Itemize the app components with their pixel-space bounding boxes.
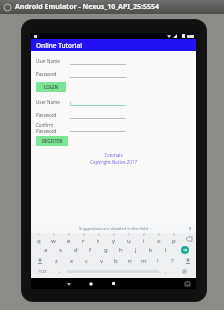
staticText: d xyxy=(74,246,78,254)
staticText: l xyxy=(165,246,167,254)
button[interactable]: 3 xyxy=(61,233,76,244)
staticText: b xyxy=(114,257,118,265)
button[interactable] xyxy=(70,56,126,65)
button[interactable]: Space xyxy=(67,269,159,274)
button[interactable]: m xyxy=(137,255,151,266)
button[interactable]: , xyxy=(53,266,67,277)
button[interactable]: d xyxy=(68,244,83,255)
staticText: n xyxy=(128,257,132,265)
staticText: REGISTER xyxy=(42,138,63,144)
staticText: c xyxy=(85,257,88,265)
staticText: 2 xyxy=(53,233,55,237)
staticText: r xyxy=(82,237,85,244)
button[interactable]: 9 xyxy=(151,233,166,244)
button[interactable]: v xyxy=(94,255,109,266)
button[interactable]: Voice input xyxy=(187,226,192,231)
staticText: e xyxy=(67,237,71,244)
button[interactable]: g xyxy=(98,244,113,255)
staticText: z xyxy=(55,257,58,265)
button[interactable]: Online Tutorial xyxy=(31,39,196,51)
staticText: 3 xyxy=(68,233,70,237)
button[interactable]: Shift xyxy=(179,255,196,266)
staticText: 6 xyxy=(113,233,115,237)
staticText: v xyxy=(100,257,104,265)
button[interactable] xyxy=(70,97,126,106)
button[interactable]: . xyxy=(159,266,173,277)
button[interactable]: a xyxy=(38,244,53,255)
button[interactable]: Shift xyxy=(31,255,49,266)
button[interactable]: Back xyxy=(62,278,76,289)
staticText: k xyxy=(149,246,153,254)
staticText: LOGIN xyxy=(44,84,59,90)
staticText: f xyxy=(89,246,92,254)
button[interactable]: x xyxy=(64,255,79,266)
button[interactable]: 2 xyxy=(46,233,61,244)
button[interactable] xyxy=(70,110,126,119)
button[interactable]: LOGIN xyxy=(36,82,66,92)
staticText: h xyxy=(119,246,123,254)
button[interactable]: f xyxy=(83,244,98,255)
button[interactable]: Enter xyxy=(173,244,196,255)
button[interactable]: Home xyxy=(84,278,98,289)
button[interactable]: Recent apps xyxy=(106,278,120,289)
staticText: 9 xyxy=(158,233,160,237)
button[interactable]: 6 xyxy=(106,233,121,244)
staticText: User Name xyxy=(36,99,66,105)
staticText: s xyxy=(59,246,62,254)
staticText: Copyright Notice 2017 xyxy=(90,159,137,165)
button[interactable]: 0 xyxy=(166,233,181,244)
staticText: Suggestions are disabled in this field xyxy=(79,226,148,231)
button[interactable]: 1 xyxy=(31,233,46,244)
button[interactable]: Settings xyxy=(173,266,196,277)
button[interactable]: 4 xyxy=(76,233,91,244)
staticText: 7 xyxy=(128,233,130,237)
button[interactable]: ?123 xyxy=(31,266,53,277)
staticText: Android Emulator - Nexus_10_API_25:5554 xyxy=(15,2,159,12)
button[interactable]: 7 xyxy=(121,233,136,244)
staticText: i xyxy=(143,237,145,244)
staticText: 4 xyxy=(83,233,85,237)
button[interactable] xyxy=(70,123,126,132)
staticText: w xyxy=(51,237,56,244)
staticText: 1 xyxy=(38,233,40,237)
staticText: o xyxy=(157,237,161,244)
staticText: 5 xyxy=(98,233,100,237)
staticText: u xyxy=(127,237,131,244)
button[interactable]: REGISTER xyxy=(36,136,68,146)
button[interactable]: ! xyxy=(151,255,165,266)
button[interactable]: l xyxy=(158,244,173,255)
staticText: Tutorials xyxy=(104,152,123,158)
button[interactable]: z xyxy=(49,255,64,266)
staticText: . xyxy=(165,268,167,275)
staticText: t xyxy=(97,237,100,244)
staticText: x xyxy=(70,257,74,265)
staticText: User Name xyxy=(36,58,66,64)
button[interactable]: 8 xyxy=(136,233,151,244)
button[interactable]: Tutorials xyxy=(104,152,123,158)
staticText: g xyxy=(104,246,108,254)
button[interactable]: j xyxy=(128,244,143,255)
button[interactable]: 5 xyxy=(91,233,106,244)
staticText: ! xyxy=(157,257,159,265)
button[interactable]: h xyxy=(113,244,128,255)
staticText: 8 xyxy=(143,233,145,237)
button[interactable] xyxy=(70,69,126,78)
button[interactable]: s xyxy=(53,244,68,255)
button[interactable]: ? xyxy=(165,255,179,266)
staticText: Password xyxy=(36,71,66,77)
staticText: , xyxy=(59,268,61,275)
button[interactable]: n xyxy=(123,255,137,266)
button[interactable]: k xyxy=(143,244,158,255)
button[interactable]: c xyxy=(79,255,94,266)
button[interactable]: b xyxy=(109,255,123,266)
staticText: Confirm Password xyxy=(36,122,66,133)
staticText: q xyxy=(37,237,41,244)
button[interactable]: Backspace xyxy=(181,233,196,244)
staticText: y xyxy=(112,237,116,244)
staticText: 0 xyxy=(173,233,175,237)
staticText: j xyxy=(135,246,137,254)
button[interactable]: Copyright Notice 2017 xyxy=(90,159,137,165)
staticText: a xyxy=(44,246,48,254)
staticText: ?123 xyxy=(38,269,47,274)
button[interactable]: Switch keyboard xyxy=(179,278,196,289)
